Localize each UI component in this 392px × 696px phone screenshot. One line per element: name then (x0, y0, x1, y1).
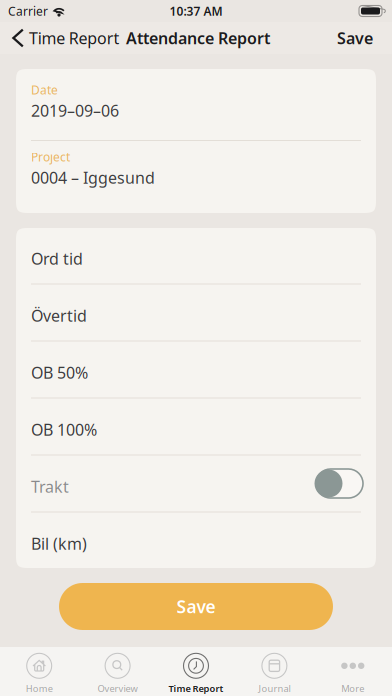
button[interactable]: Overview (78, 644, 157, 696)
staticText: Overview (98, 682, 138, 695)
button[interactable]: Ord tid (16, 227, 376, 283)
staticText: Journal (258, 682, 290, 695)
staticText: 10:37 AM (169, 3, 222, 19)
button[interactable]: Date (16, 69, 376, 140)
staticText: 0004 – Iggesund (31, 167, 155, 188)
staticText: Ord tid (31, 248, 83, 269)
staticText: Övertid (31, 305, 87, 326)
button[interactable]: Time Report (157, 644, 235, 696)
staticText: Carrier (8, 3, 48, 19)
staticText: OB 100% (31, 419, 97, 440)
staticText: Time Report (29, 27, 119, 49)
staticText: Time Report (168, 682, 223, 695)
staticText: Home (26, 682, 53, 695)
button[interactable]: Bil (km) (16, 512, 376, 568)
staticText: Trakt (31, 476, 69, 497)
staticText: Save (176, 595, 215, 618)
button[interactable]: Trakt (16, 455, 376, 511)
staticText: Project (31, 149, 70, 165)
button[interactable]: Save (59, 583, 333, 630)
staticText: More (341, 682, 364, 695)
button[interactable]: OB 100% (16, 398, 376, 454)
staticText: Save (337, 27, 373, 49)
staticText: Attendance Report (126, 27, 270, 49)
button[interactable]: Övertid (16, 284, 376, 340)
button[interactable]: Home (0, 644, 78, 696)
button[interactable]: Time Report (0, 22, 119, 54)
button[interactable]: Save (337, 22, 392, 54)
staticText: Date (31, 82, 58, 98)
button[interactable]: OB 50% (16, 341, 376, 397)
staticText: OB 50% (31, 362, 88, 383)
button[interactable]: Journal (235, 644, 314, 696)
staticText: 2019–09–06 (31, 100, 119, 121)
button[interactable]: More (314, 644, 392, 696)
button[interactable]: Project (16, 141, 376, 213)
staticText: Bil (km) (31, 533, 87, 554)
